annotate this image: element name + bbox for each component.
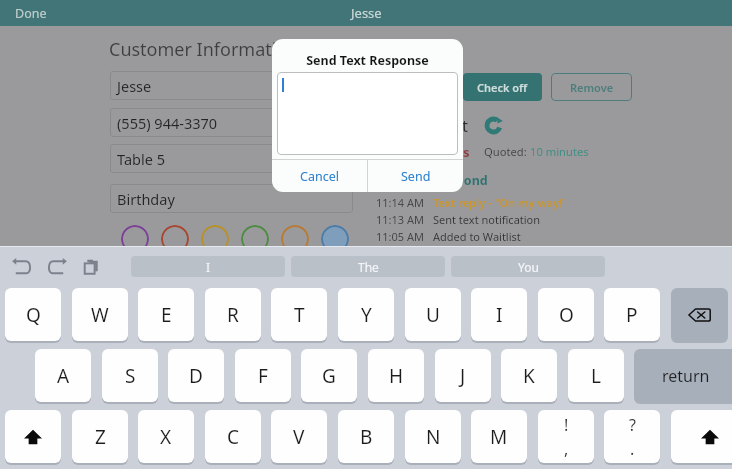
button[interactable]: M — [471, 410, 527, 463]
staticText: 10 minutes — [530, 144, 589, 159]
button[interactable]: I — [131, 256, 285, 277]
button[interactable]: W — [72, 288, 128, 341]
button[interactable]: D — [168, 349, 224, 402]
button[interactable]: P — [604, 288, 660, 341]
button[interactable] — [241, 225, 269, 253]
button[interactable]: B — [338, 410, 394, 463]
staticText: You — [518, 259, 539, 275]
button[interactable]: Paste — [79, 254, 105, 280]
button[interactable]: Send — [368, 160, 463, 192]
staticText: Remove — [570, 80, 614, 95]
staticText: Respond — [434, 172, 488, 189]
button[interactable]: I — [471, 288, 527, 341]
staticText: s — [463, 143, 470, 161]
button[interactable]: Check off — [463, 73, 542, 101]
button[interactable]: Shift — [671, 410, 732, 463]
button[interactable]: O — [538, 288, 594, 341]
staticText: The — [358, 259, 379, 275]
staticText: Birthday — [117, 189, 175, 209]
button[interactable]: R — [205, 288, 261, 341]
staticText: 11:05 AM — [376, 229, 433, 244]
staticText: Sent text notification — [433, 212, 541, 227]
staticText: T — [294, 302, 305, 328]
button[interactable]: (555) 944-3370 — [110, 108, 353, 137]
button[interactable]: T — [271, 288, 327, 341]
staticText: return — [662, 365, 710, 387]
staticText: Cancel — [300, 168, 339, 185]
staticText: Y — [361, 302, 372, 328]
staticText: Text reply - "On my way!" — [433, 195, 568, 210]
button[interactable]: return — [634, 349, 732, 402]
button[interactable] — [161, 225, 189, 253]
button[interactable]: Cancel — [272, 160, 367, 192]
staticText: . — [630, 438, 635, 460]
button[interactable]: Table 5 — [110, 144, 353, 173]
staticText: P — [626, 302, 638, 328]
staticText: I — [496, 302, 503, 328]
button[interactable]: F — [235, 349, 291, 402]
staticText: L — [591, 363, 601, 389]
staticText: Jesse — [351, 4, 382, 22]
staticText: Table 5 — [117, 149, 165, 169]
button[interactable]: Z — [72, 410, 128, 463]
staticText: R — [227, 302, 239, 328]
staticText: U — [426, 302, 440, 328]
staticText: Quoted: — [484, 144, 530, 159]
staticText: G — [322, 363, 336, 389]
button[interactable]: G — [301, 349, 357, 402]
button[interactable]: Shift — [5, 410, 61, 463]
staticText: t — [462, 114, 468, 136]
button[interactable]: L — [568, 349, 624, 402]
staticText: ! — [564, 414, 569, 436]
staticText: Jesse — [117, 76, 152, 96]
button[interactable]: Jesse — [110, 71, 353, 100]
staticText: ? — [629, 414, 636, 436]
button[interactable]: E — [138, 288, 194, 341]
button[interactable] — [321, 225, 349, 253]
button[interactable]: The — [291, 256, 445, 277]
button[interactable]: H — [368, 349, 424, 402]
staticText: X — [160, 424, 172, 450]
button[interactable] — [121, 225, 149, 253]
button[interactable]: Y — [338, 288, 394, 341]
staticText: I — [206, 259, 211, 275]
staticText: F — [258, 363, 268, 389]
staticText: Send — [401, 168, 431, 185]
staticText: C — [227, 424, 240, 450]
button[interactable]: You — [451, 256, 605, 277]
staticText: Check off — [477, 80, 528, 95]
button[interactable]: S — [102, 349, 158, 402]
button[interactable] — [281, 225, 309, 253]
button[interactable]: Birthday — [110, 184, 353, 213]
staticText: K — [523, 363, 535, 389]
staticText: D — [189, 363, 203, 389]
button[interactable]: U — [405, 288, 461, 341]
button[interactable]: Done — [0, 2, 57, 25]
staticText: Added to Waitlist — [433, 229, 521, 244]
button[interactable]: V — [271, 410, 327, 463]
button[interactable]: C — [205, 410, 261, 463]
staticText: J — [460, 363, 466, 389]
staticText: E — [161, 302, 172, 328]
staticText: M — [490, 424, 508, 450]
button[interactable]: Redo — [44, 254, 70, 280]
staticText: W — [91, 302, 109, 328]
button[interactable]: A — [35, 349, 91, 402]
button[interactable] — [201, 225, 229, 253]
button[interactable]: Q — [5, 288, 61, 341]
staticText: N — [426, 424, 441, 450]
button[interactable]: Refresh — [484, 116, 503, 135]
button[interactable]: Undo — [9, 254, 35, 280]
staticText: Z — [95, 424, 106, 450]
button[interactable]: ! — [538, 410, 594, 463]
button[interactable]: N — [405, 410, 461, 463]
button[interactable]: X — [138, 410, 194, 463]
button[interactable]: ? — [604, 410, 660, 463]
button[interactable]: K — [501, 349, 557, 402]
staticText: 11:14 AM — [376, 195, 433, 210]
staticText: 11:13 AM — [376, 212, 433, 227]
button[interactable]: Backspace — [671, 288, 728, 341]
button[interactable]: J — [435, 349, 491, 402]
button[interactable]: Remove — [551, 73, 632, 101]
staticText: Send Text Response — [272, 52, 463, 69]
